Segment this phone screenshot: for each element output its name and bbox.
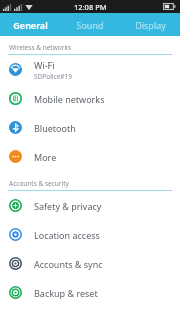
staticText: Accounts & security [9, 179, 69, 188]
staticText: Wi-Fi [34, 59, 55, 71]
other: Accounts & sync [9, 257, 22, 270]
other: Bluetooth [9, 121, 22, 134]
button[interactable]: Location access [0, 220, 180, 249]
staticText: Safety & privacy [34, 200, 102, 212]
button[interactable]: Backup & reset [0, 278, 180, 307]
other: Location access [9, 228, 22, 241]
button[interactable]: Wi-Fi [0, 55, 180, 84]
button[interactable]: Sound [60, 13, 120, 36]
button[interactable]: Safety & privacy [0, 191, 180, 220]
button[interactable]: Display [120, 13, 180, 36]
staticText: General [13, 19, 48, 31]
staticText: 12:08 PM [74, 2, 107, 12]
other: Mobile networks [9, 92, 22, 105]
staticText: Bluetooth [34, 122, 76, 134]
staticText: Display [135, 19, 166, 31]
button[interactable]: General [0, 13, 60, 36]
staticText: Wireless & networks [9, 43, 71, 52]
staticText: Accounts & sync [34, 258, 103, 270]
other: Safety & privacy [9, 199, 22, 212]
staticText: Sound [76, 19, 104, 31]
button[interactable]: Accounts & sync [0, 249, 180, 278]
other: Backup & reset [9, 286, 22, 299]
button[interactable]: Mobile networks [0, 84, 180, 113]
staticText: Backup & reset [34, 287, 98, 299]
other: More [9, 150, 22, 163]
staticText: Location access [34, 229, 100, 241]
staticText: More [34, 151, 57, 163]
staticText: SDPolice#19 [34, 72, 72, 81]
button[interactable]: More [0, 142, 180, 171]
button[interactable]: Bluetooth [0, 113, 180, 142]
other: Wi-Fi [9, 63, 22, 76]
staticText: Mobile networks [34, 93, 105, 105]
